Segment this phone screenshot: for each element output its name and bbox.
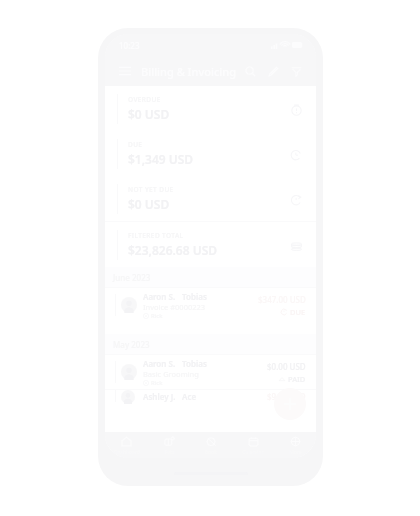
staticText: Aaron S. bbox=[143, 358, 176, 369]
staticText: $23,826.68 USD bbox=[128, 242, 218, 258]
button[interactable]: Aaron S. bbox=[105, 355, 316, 389]
staticText: Ashley J. bbox=[143, 391, 176, 402]
staticText: $347.00 USD bbox=[258, 294, 306, 305]
staticText: Aaron S. bbox=[143, 291, 176, 302]
staticText: Invoice #0000223 bbox=[143, 302, 206, 312]
staticText: Basic Grooming bbox=[143, 369, 199, 379]
staticText: PAID bbox=[288, 374, 306, 384]
staticText: $1,349 USD bbox=[128, 151, 194, 167]
staticText: $0.00 USD bbox=[267, 361, 306, 372]
staticText: $0 USD bbox=[128, 106, 170, 122]
staticText: Tobias bbox=[182, 291, 207, 302]
staticText: $0 USD bbox=[128, 196, 170, 212]
staticText: NOT YET DUE bbox=[128, 185, 174, 194]
staticText: Ace bbox=[182, 391, 197, 402]
button[interactable]: Ashley J. bbox=[105, 390, 316, 404]
staticText: Tobias bbox=[182, 358, 207, 369]
staticText: DUE bbox=[128, 140, 143, 149]
staticText: DUE bbox=[290, 307, 306, 317]
staticText: OVERDUE bbox=[128, 95, 161, 104]
staticText: FILTERED TOTAL bbox=[128, 231, 184, 240]
